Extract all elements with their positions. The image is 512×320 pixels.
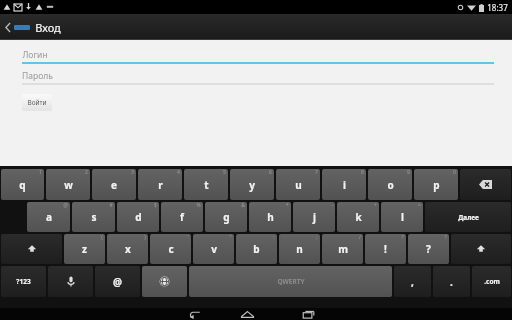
button[interactable]: ? [365, 234, 406, 264]
staticText: 8 [361, 169, 364, 176]
staticText: 4 [177, 169, 180, 176]
button[interactable]: ' [150, 234, 191, 264]
staticText: Вход [35, 20, 61, 35]
button[interactable]: 5 [184, 169, 228, 200]
staticText: Логин [22, 49, 48, 61]
staticText: 3 [131, 169, 134, 176]
button[interactable]: Recent apps [278, 308, 340, 320]
button[interactable]: QWERTY [189, 266, 392, 297]
staticText: d [135, 210, 142, 224]
button[interactable]: ? [408, 234, 449, 264]
button[interactable]: , [394, 266, 431, 297]
button[interactable]: Войти [22, 94, 52, 111]
staticText: 9 [407, 169, 410, 176]
staticText: ? [426, 242, 431, 256]
button[interactable]: ) [107, 234, 148, 264]
staticText: % [196, 202, 201, 209]
staticText: Войти [27, 98, 47, 107]
staticText: . [450, 275, 453, 289]
button[interactable]: ( [64, 234, 105, 264]
staticText: e [111, 178, 117, 192]
staticText: a [46, 210, 52, 224]
button[interactable]: Home [216, 308, 278, 320]
staticText: & [241, 202, 245, 209]
button[interactable]: . [433, 266, 470, 297]
button[interactable]: 8 [322, 169, 366, 200]
button[interactable]: - [293, 202, 335, 232]
staticText: : [273, 234, 275, 241]
button[interactable]: : [236, 234, 277, 264]
staticText: 5 [223, 169, 226, 176]
staticText: i [343, 178, 346, 192]
staticText: 0 [453, 169, 456, 176]
button[interactable]: " [193, 234, 234, 264]
button[interactable]: 4 [138, 169, 182, 200]
staticText: p [433, 178, 440, 192]
button[interactable]: & [205, 202, 247, 232]
button[interactable]: Shift [451, 234, 511, 264]
staticText: @ [63, 202, 68, 209]
button[interactable]: / [322, 234, 363, 264]
button[interactable]: Change language [142, 266, 187, 297]
staticText: r [158, 178, 163, 192]
button[interactable]: $ [117, 202, 159, 232]
button[interactable]: 1 [1, 169, 44, 200]
button[interactable]: Shift [1, 234, 62, 264]
button[interactable]: Пароль [22, 70, 494, 85]
staticText: m [338, 242, 348, 256]
button[interactable]: Back [172, 308, 216, 320]
button[interactable]: 6 [230, 169, 274, 200]
button[interactable]: Backspace [460, 169, 511, 200]
staticText: w [64, 178, 73, 192]
button[interactable]: 7 [276, 169, 320, 200]
staticText: 18:37 [487, 2, 508, 13]
staticText: b [253, 242, 260, 256]
button[interactable]: % [161, 202, 203, 232]
staticText: q [19, 178, 26, 192]
staticText: l [401, 210, 404, 224]
staticText: ) [144, 234, 146, 241]
staticText: o [387, 178, 394, 192]
staticText: * [286, 202, 289, 209]
staticText: # [109, 202, 113, 209]
button[interactable]: @ [27, 202, 70, 232]
staticText: + [374, 202, 377, 209]
staticText: c [168, 242, 174, 256]
button[interactable]: 2 [46, 169, 90, 200]
button[interactable]: + [337, 202, 379, 232]
button[interactable]: ; [279, 234, 320, 264]
staticText: / [359, 234, 361, 241]
button[interactable]: = [381, 202, 423, 232]
staticText: ; [316, 234, 318, 241]
staticText: 2 [85, 169, 88, 176]
staticText: t [204, 178, 209, 192]
staticText: = [418, 202, 421, 209]
button[interactable]: Back [0, 14, 36, 40]
staticText: ( [101, 234, 103, 241]
staticText: 1 [39, 169, 42, 176]
button[interactable]: @ [95, 266, 140, 297]
staticText: j [313, 210, 316, 224]
staticText: - [331, 202, 333, 209]
staticText: 7 [315, 169, 318, 176]
staticText: ! [384, 242, 387, 256]
button[interactable]: ?123 [1, 266, 46, 297]
button[interactable]: .com [472, 266, 511, 297]
button[interactable]: * [249, 202, 291, 232]
button[interactable]: Voice input [48, 266, 93, 297]
button[interactable]: # [72, 202, 115, 232]
button[interactable]: 9 [368, 169, 412, 200]
staticText: u [295, 178, 302, 192]
button[interactable]: Далее [425, 202, 511, 232]
staticText: ? [401, 234, 404, 241]
staticText: z [82, 242, 87, 256]
staticText: ? [444, 234, 447, 241]
button[interactable]: 3 [92, 169, 136, 200]
staticText: $ [154, 202, 157, 209]
button[interactable]: Логин [22, 49, 494, 64]
staticText: h [267, 210, 274, 224]
staticText: k [355, 210, 362, 224]
button[interactable]: 0 [414, 169, 458, 200]
staticText: Пароль [22, 70, 53, 82]
staticText: s [91, 210, 97, 224]
